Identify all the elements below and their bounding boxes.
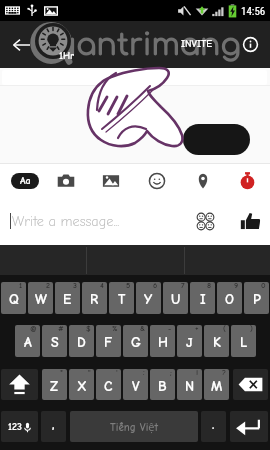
button[interactable]: L [231, 325, 256, 357]
staticText: ; [170, 369, 172, 377]
staticText: INVITE [181, 38, 213, 50]
button[interactable]: O [217, 282, 242, 314]
button[interactable]: Aa [11, 173, 39, 189]
button[interactable]: Location [194, 172, 212, 190]
button[interactable]: J [177, 325, 202, 357]
staticText: 1Hr [59, 50, 75, 62]
staticText: Q [9, 291, 19, 307]
staticText: H [158, 334, 168, 350]
button[interactable]: Enter [230, 411, 268, 442]
button[interactable]: R [82, 282, 107, 314]
button[interactable]: P [244, 282, 269, 314]
staticText: X [77, 378, 87, 394]
staticText: Aa [20, 175, 31, 187]
button[interactable]: Camera [57, 172, 75, 190]
staticText: 3 [73, 282, 77, 290]
button[interactable]: V [123, 369, 148, 400]
button[interactable]: G [123, 325, 148, 357]
staticText: ? [222, 369, 226, 377]
staticText: . [212, 417, 215, 432]
staticText: 5 [126, 282, 131, 290]
button[interactable]: Stickers [148, 172, 166, 190]
button[interactable]: C [96, 369, 121, 400]
button[interactable]: Q [1, 282, 26, 314]
staticText: 6 [153, 282, 158, 290]
button[interactable]: E [55, 282, 80, 314]
staticText: ! [196, 369, 199, 377]
staticText: T [118, 291, 126, 307]
button[interactable]: INVITE [178, 36, 216, 52]
button[interactable]: T [109, 282, 134, 314]
staticText: ) [250, 325, 253, 333]
button[interactable]: Z [42, 369, 67, 400]
button[interactable]: F [96, 325, 121, 357]
staticText: - [168, 325, 172, 333]
staticText: C [104, 378, 113, 394]
staticText: P [253, 291, 261, 307]
button[interactable]: Gallery [102, 172, 120, 190]
staticText: & [140, 325, 145, 333]
staticText: ( [223, 325, 226, 333]
staticText: 7 [181, 282, 185, 290]
staticText: 8 [207, 282, 212, 290]
staticText: + [195, 325, 199, 333]
button[interactable]: N [177, 369, 202, 400]
button[interactable]: Y [136, 282, 161, 314]
staticText: 2 [46, 282, 50, 290]
staticText: R [90, 291, 99, 307]
button[interactable]: U [163, 282, 188, 314]
staticText: 1 [19, 282, 23, 290]
staticText: B [158, 378, 167, 394]
button[interactable]: Tiếng Việt [70, 411, 198, 442]
button[interactable]: . [201, 411, 226, 442]
button[interactable]: Timer [238, 171, 257, 190]
staticText: % [112, 325, 118, 333]
staticText: Y [144, 291, 153, 307]
button[interactable]: D [69, 325, 94, 357]
button[interactable]: Numbers and voice input [1, 411, 38, 442]
button[interactable]: Like [240, 211, 261, 232]
button[interactable]: Backspace [233, 369, 268, 400]
staticText: W [35, 291, 47, 307]
staticText: 4 [100, 282, 104, 290]
button[interactable]: Shift [1, 369, 38, 400]
button[interactable]: X [69, 369, 94, 400]
button[interactable]: K [204, 325, 229, 357]
staticText: U [171, 291, 181, 307]
button[interactable]: B [150, 369, 175, 400]
staticText: L [240, 334, 248, 350]
staticText: uantrimang [56, 29, 241, 62]
staticText: ' [116, 369, 118, 377]
staticText: N [185, 378, 195, 394]
staticText: # [58, 325, 64, 333]
button[interactable]: S [42, 325, 67, 357]
staticText: 0 [261, 282, 266, 290]
button[interactable]: H [150, 325, 175, 357]
button[interactable]: M [204, 369, 229, 400]
staticText: G [131, 334, 141, 350]
staticText: 14:56 [241, 5, 266, 18]
button[interactable]: Profile [35, 23, 71, 59]
button[interactable]: I [190, 282, 215, 314]
staticText: Z [50, 378, 59, 394]
staticText: $ [86, 325, 91, 333]
button[interactable]: W [28, 282, 53, 314]
button[interactable]: Info [243, 37, 258, 52]
staticText: @ [30, 325, 37, 333]
staticText: K [213, 334, 221, 350]
staticText: V [132, 378, 140, 394]
staticText: F [104, 334, 113, 350]
staticText: Tiếng Việt [110, 419, 159, 434]
staticText: M [211, 378, 223, 394]
staticText: 9 [234, 282, 239, 290]
button[interactable]: Stickers [196, 212, 215, 231]
button[interactable]: A [15, 325, 40, 357]
staticText: * [60, 369, 64, 377]
staticText: J [186, 334, 193, 350]
button[interactable]: , [41, 411, 66, 442]
staticText: D [77, 334, 86, 350]
staticText: Write a message... [12, 213, 120, 229]
button[interactable]: Back [11, 35, 31, 55]
staticText: : [143, 369, 145, 377]
staticText: O [225, 291, 234, 307]
